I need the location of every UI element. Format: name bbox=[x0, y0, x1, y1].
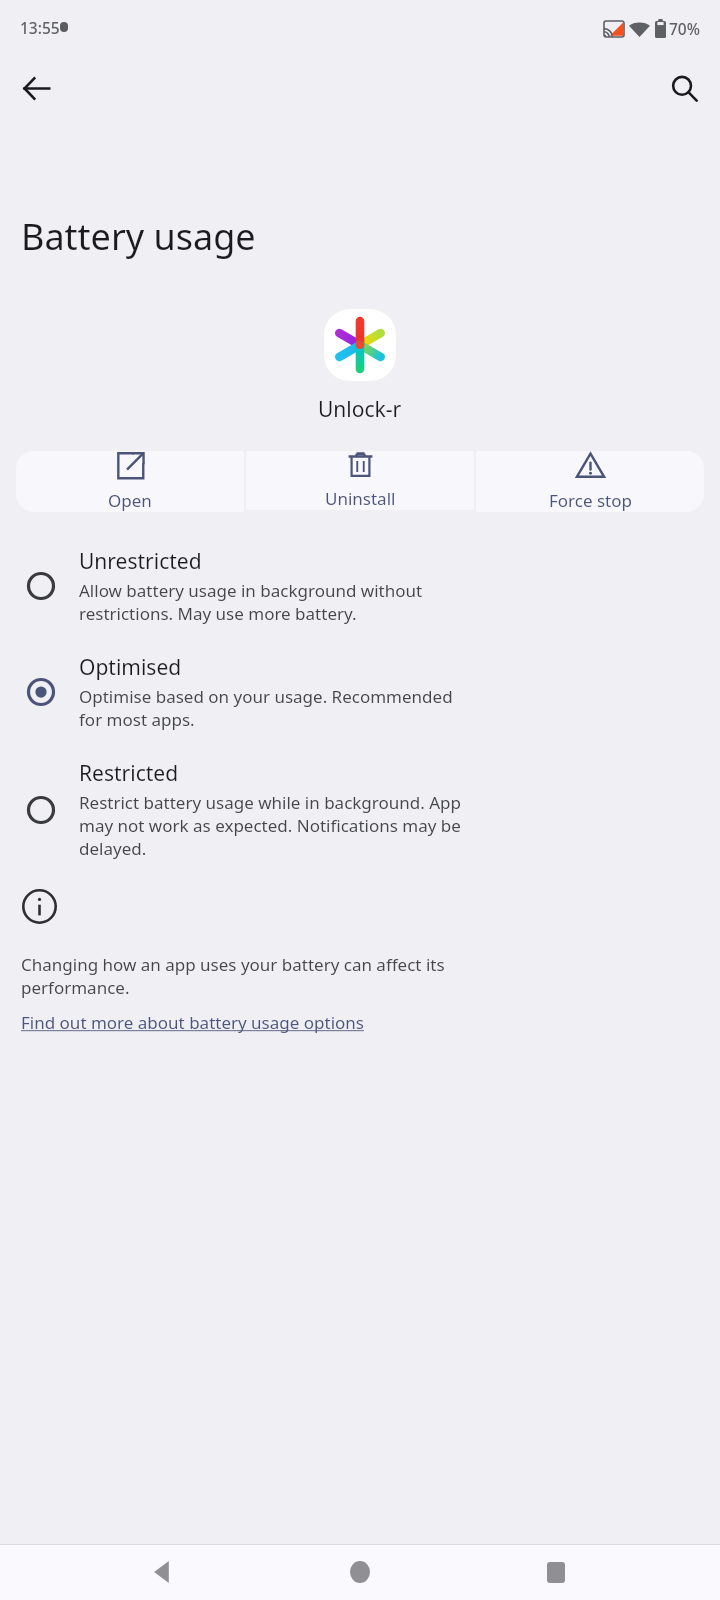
button[interactable]: Optimised bbox=[0, 649, 720, 735]
staticText: 70% bbox=[669, 18, 700, 39]
button[interactable]: Restricted bbox=[0, 755, 720, 864]
button[interactable]: Open bbox=[16, 451, 244, 512]
staticText: Uninstall bbox=[325, 487, 396, 510]
staticText: Changing how an app uses your battery ca… bbox=[21, 953, 445, 999]
button[interactable]: Uninstall bbox=[246, 451, 474, 510]
staticText: Force stop bbox=[549, 489, 632, 512]
button[interactable]: Home bbox=[328, 1544, 392, 1600]
staticText: Restricted bbox=[79, 759, 179, 788]
button[interactable]: Back bbox=[8, 60, 64, 116]
staticText: Find out more about battery usage option… bbox=[21, 1011, 364, 1034]
staticText: 13:55 bbox=[20, 17, 60, 38]
staticText: Restrict battery usage while in backgrou… bbox=[79, 791, 462, 860]
button[interactable]: Find out more about battery usage option… bbox=[21, 1011, 364, 1034]
button[interactable]: Recent apps bbox=[524, 1544, 588, 1600]
staticText: Allow battery usage in background withou… bbox=[79, 579, 423, 625]
button[interactable]: Back bbox=[132, 1544, 196, 1600]
staticText: Open bbox=[108, 489, 152, 512]
button[interactable]: Search bbox=[656, 60, 712, 116]
staticText: Unlock-r bbox=[318, 395, 402, 424]
staticText: Optimise based on your usage. Recommende… bbox=[79, 685, 453, 731]
staticText: Unrestricted bbox=[79, 547, 202, 576]
button[interactable]: Unrestricted bbox=[0, 543, 720, 629]
button[interactable]: Force stop bbox=[476, 451, 704, 512]
staticText: Battery usage bbox=[21, 212, 256, 261]
staticText: Optimised bbox=[79, 653, 182, 682]
